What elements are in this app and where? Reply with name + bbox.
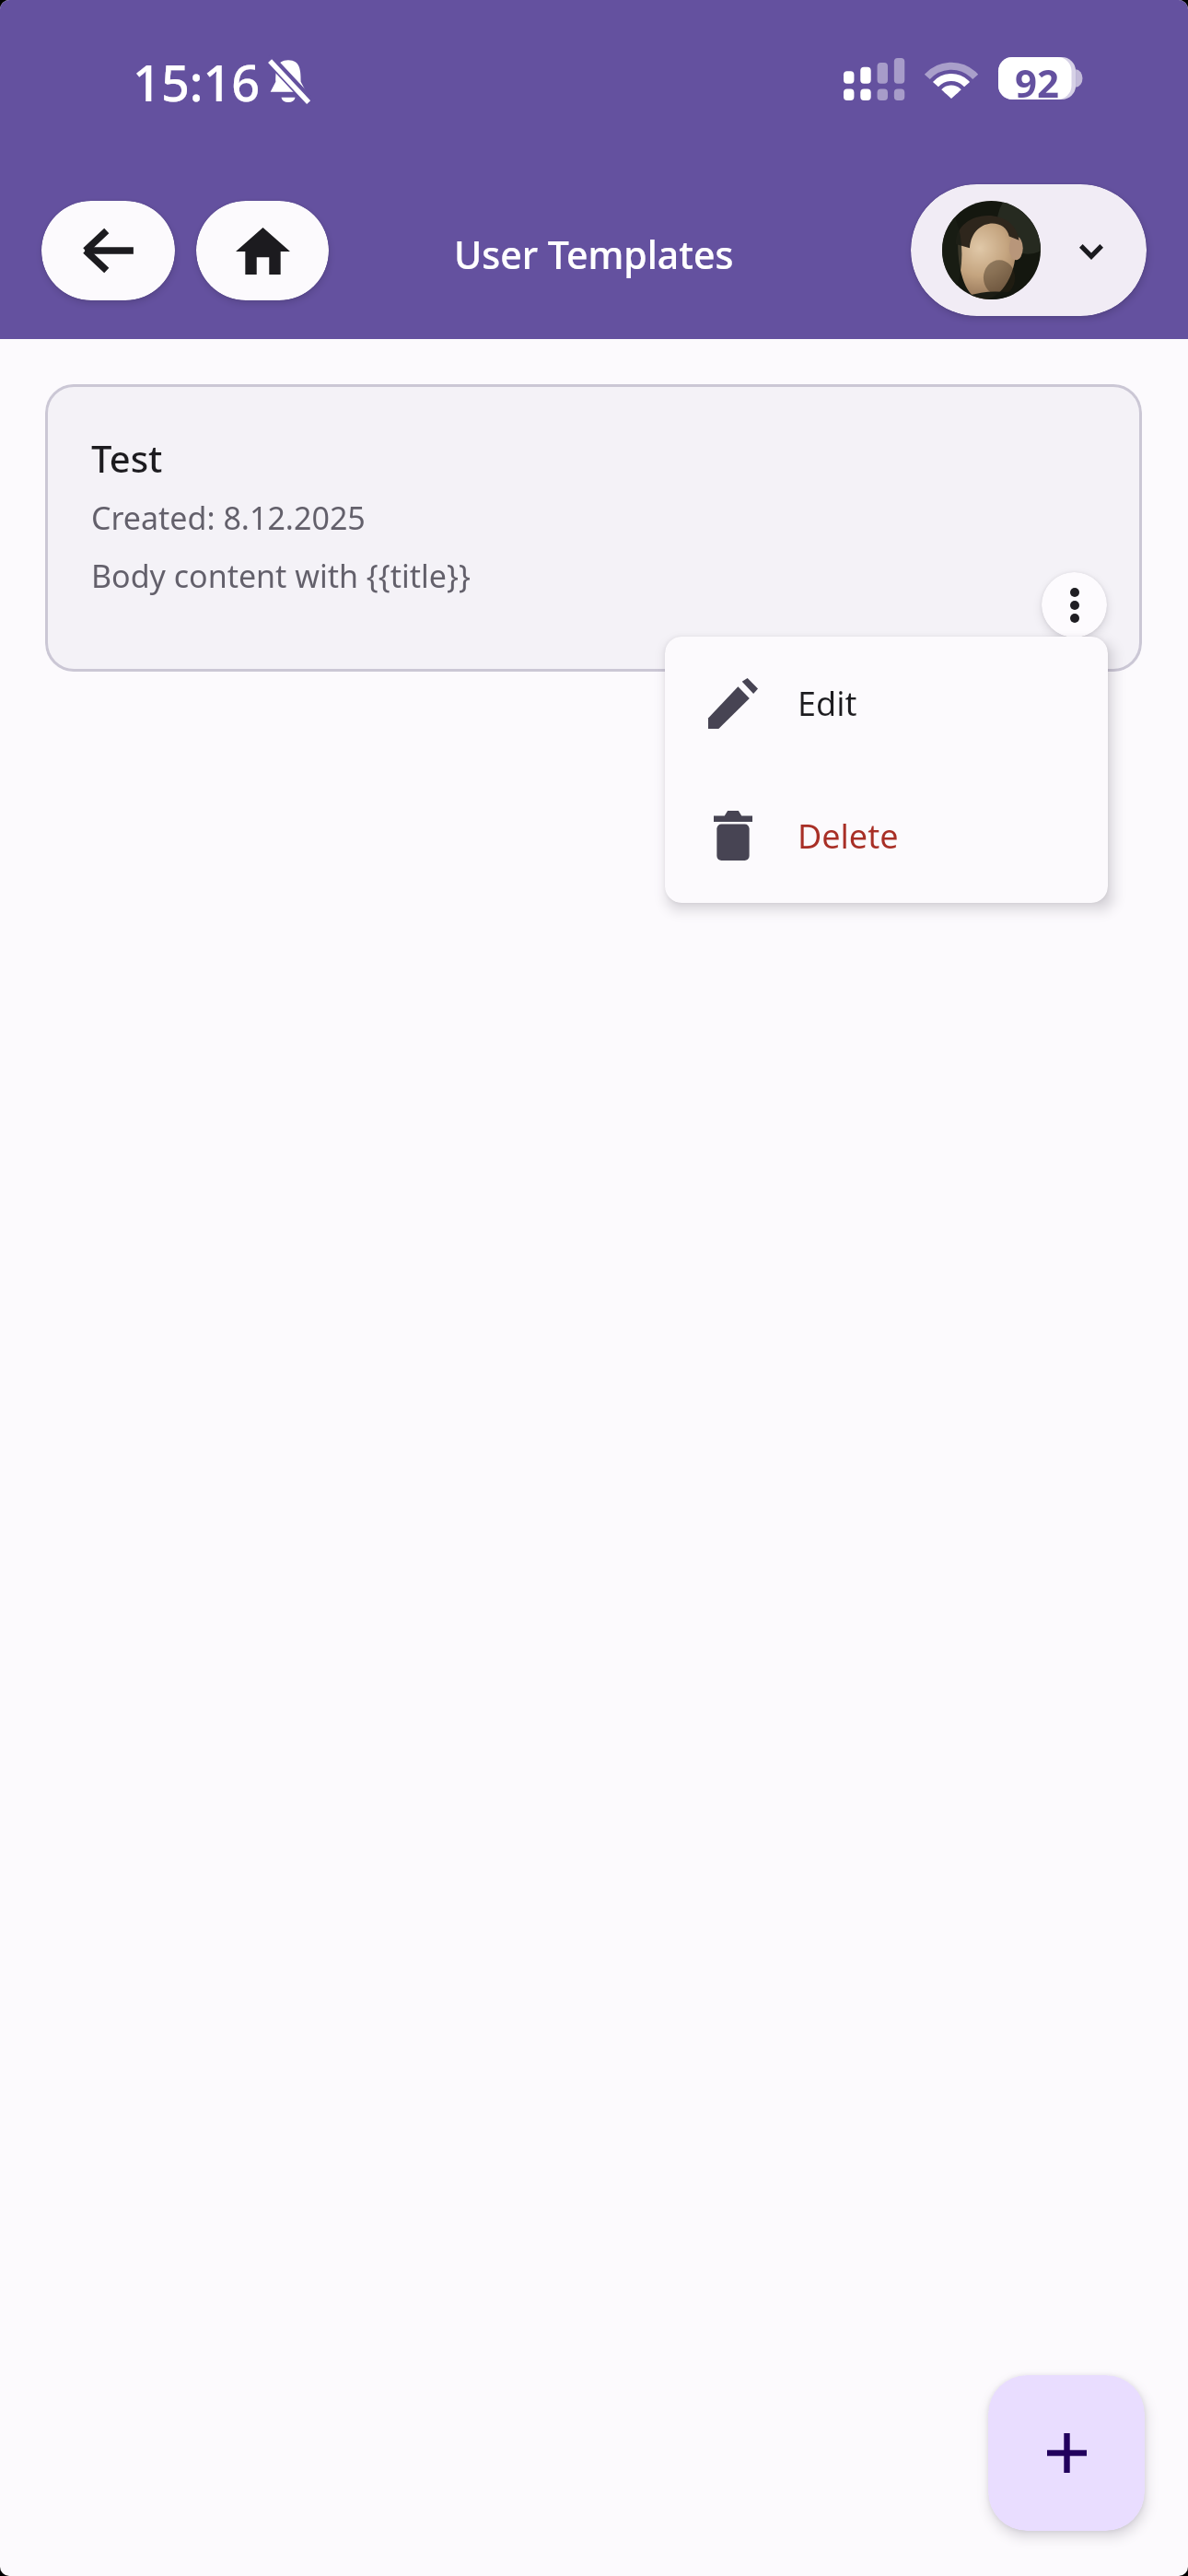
staticText: 92 <box>1015 56 1060 99</box>
button[interactable]: Test <box>45 384 1142 672</box>
staticText: Created: 8.12.2025 <box>91 497 366 539</box>
button[interactable]: Edit <box>665 637 1108 769</box>
button[interactable]: More options <box>1042 572 1107 638</box>
staticText: Edit <box>798 681 857 726</box>
button[interactable]: Back <box>41 201 175 300</box>
staticText: Delete <box>798 814 899 859</box>
button[interactable]: Account menu <box>911 184 1147 316</box>
button[interactable]: Home <box>196 201 329 300</box>
staticText: User Templates <box>454 228 734 280</box>
staticText: 15:16 <box>133 48 261 116</box>
button[interactable]: Delete <box>665 769 1108 902</box>
button[interactable]: Add template <box>988 2375 1145 2531</box>
staticText: Body content with {{title}} <box>91 555 471 597</box>
staticText: Test <box>91 433 163 483</box>
